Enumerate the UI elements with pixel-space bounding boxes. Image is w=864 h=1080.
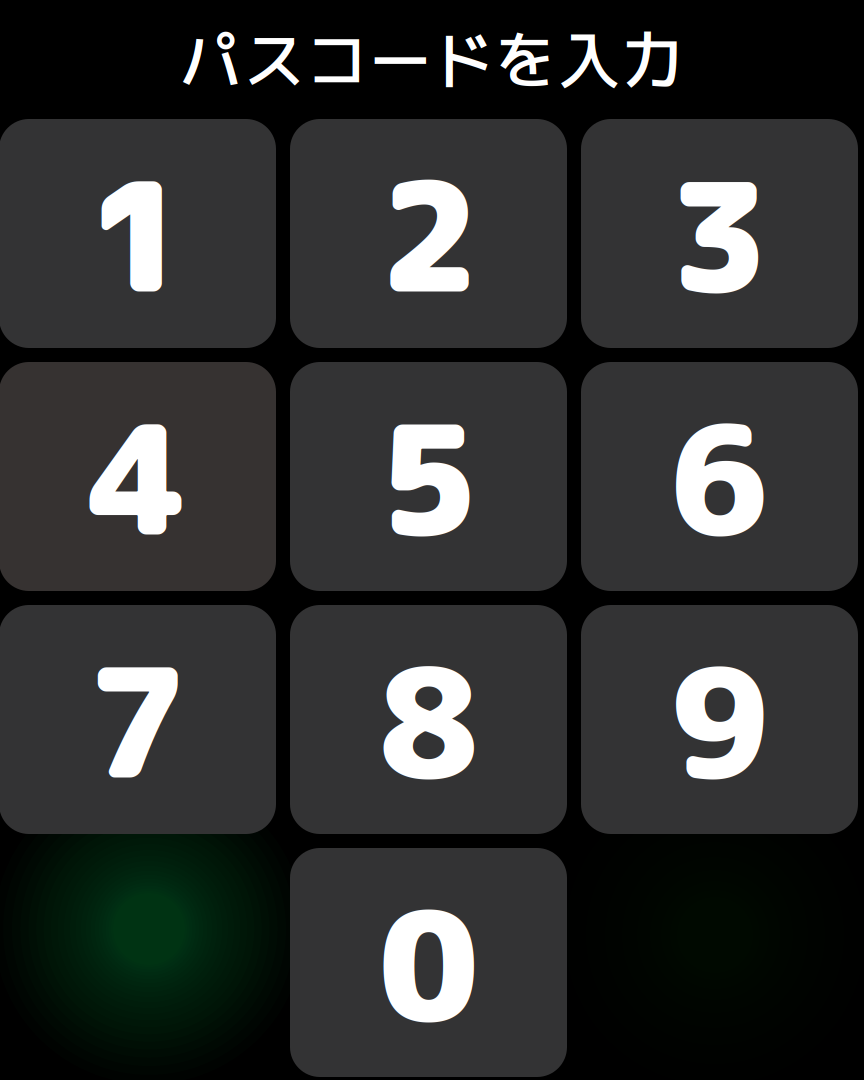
- button[interactable]: 5: [290, 362, 567, 591]
- button[interactable]: 9: [581, 605, 858, 834]
- button[interactable]: 4: [0, 362, 276, 591]
- staticText: 3: [670, 129, 769, 340]
- button[interactable]: 1: [0, 119, 276, 348]
- button[interactable]: 8: [290, 605, 567, 834]
- staticText: 0: [379, 858, 478, 1069]
- button[interactable]: 3: [581, 119, 858, 348]
- staticText: 5: [379, 372, 478, 583]
- staticText: 4: [88, 372, 187, 583]
- button[interactable]: 2: [290, 119, 567, 348]
- staticText: 7: [88, 615, 187, 826]
- staticText: パスコードを入力: [180, 16, 684, 103]
- staticText: 6: [670, 372, 769, 583]
- staticText: 8: [379, 615, 478, 826]
- staticText: 9: [670, 615, 769, 826]
- button[interactable]: 6: [581, 362, 858, 591]
- button[interactable]: 0: [290, 848, 567, 1077]
- staticText: 1: [88, 129, 187, 340]
- staticText: 2: [379, 129, 478, 340]
- button[interactable]: 7: [0, 605, 276, 834]
